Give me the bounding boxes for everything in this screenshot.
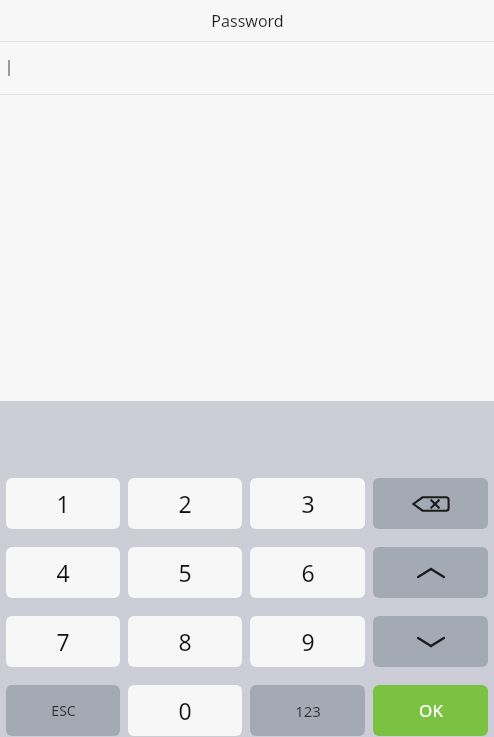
staticText: 6	[301, 557, 315, 588]
button[interactable]: 0	[128, 685, 242, 736]
button[interactable]: 5	[128, 547, 242, 598]
staticText: 4	[56, 557, 70, 588]
button[interactable]: 1	[6, 478, 120, 529]
staticText: Password	[211, 10, 284, 32]
button[interactable]: OK	[373, 685, 488, 736]
button[interactable]: 7	[6, 616, 120, 667]
button[interactable]: ESC	[6, 685, 120, 736]
button[interactable]: Backspace	[373, 478, 488, 529]
staticText: 1	[56, 488, 70, 519]
button[interactable]	[0, 42, 494, 94]
button[interactable]: 123	[250, 685, 365, 736]
staticText: OK	[419, 699, 443, 722]
button[interactable]: 4	[6, 547, 120, 598]
staticText: 3	[301, 488, 315, 519]
button[interactable]: 9	[250, 616, 365, 667]
staticText: 7	[56, 626, 70, 657]
button[interactable]: 2	[128, 478, 242, 529]
button[interactable]: 8	[128, 616, 242, 667]
staticText: 123	[295, 701, 321, 721]
button[interactable]: Scroll up	[373, 547, 488, 598]
button[interactable]: 6	[250, 547, 365, 598]
staticText: 2	[178, 488, 192, 519]
staticText: ESC	[51, 701, 76, 720]
button[interactable]: Scroll down	[373, 616, 488, 667]
staticText: 5	[178, 557, 192, 588]
staticText: 0	[178, 695, 192, 726]
staticText: 9	[301, 626, 315, 657]
button[interactable]: 3	[250, 478, 365, 529]
staticText: 8	[178, 626, 192, 657]
